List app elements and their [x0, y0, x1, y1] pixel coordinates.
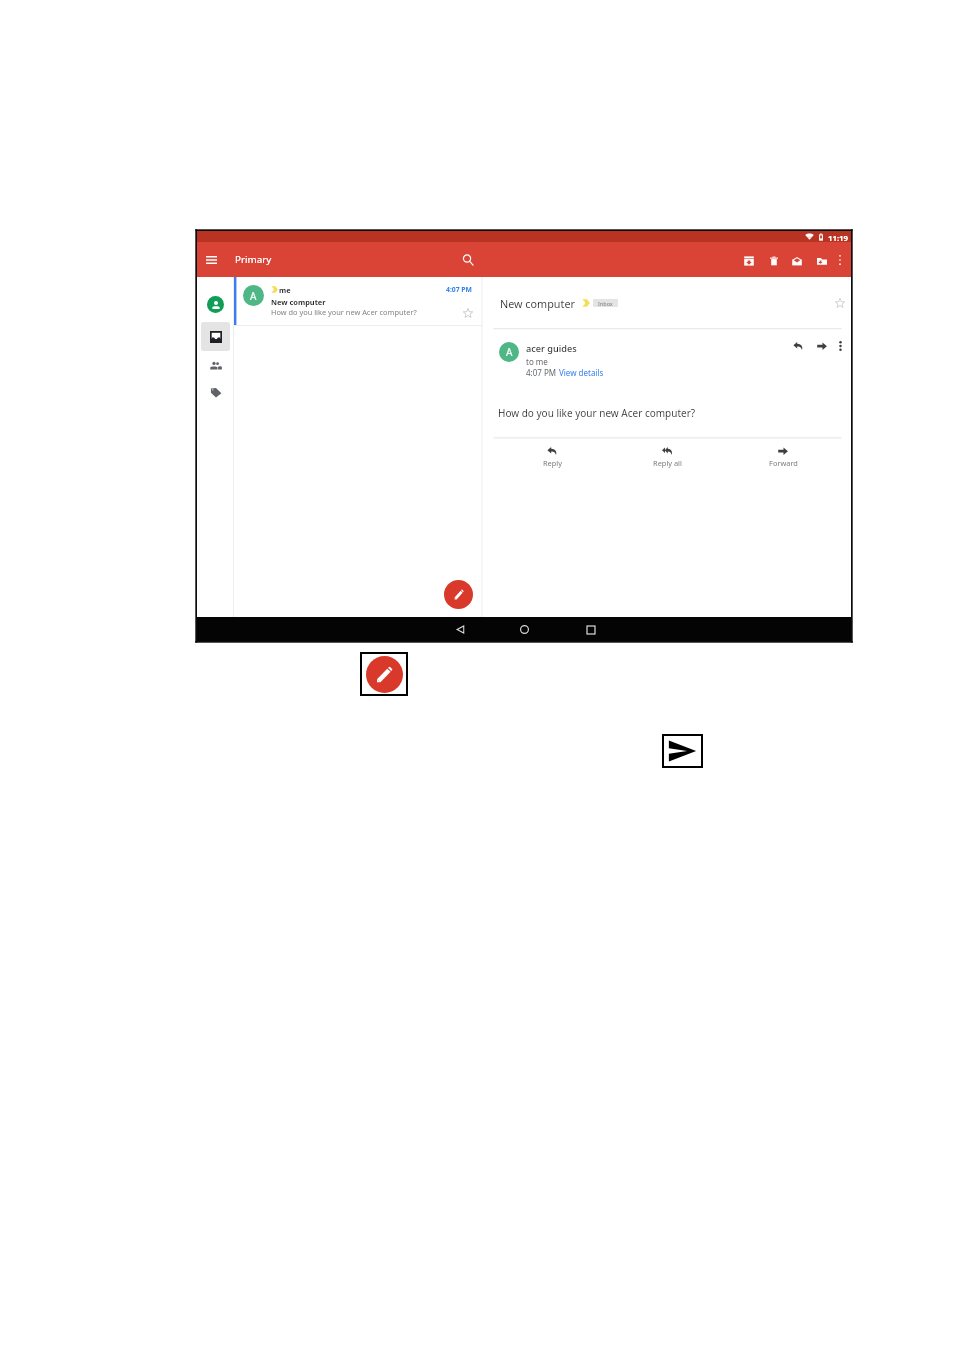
button[interactable]: Recent apps — [584, 623, 597, 636]
staticText: A — [250, 289, 257, 303]
button[interactable]: Reply — [790, 338, 806, 354]
button[interactable]: Compose — [444, 580, 473, 609]
staticText: 11:19 — [828, 233, 849, 244]
staticText: Reply all — [653, 458, 682, 468]
button[interactable]: Send — [664, 736, 701, 766]
staticText: New computer — [500, 296, 575, 311]
staticText: Primary — [235, 253, 272, 266]
button[interactable]: View details — [559, 367, 604, 378]
button[interactable]: Reply all — [645, 446, 689, 468]
staticText: Forward — [769, 458, 798, 468]
staticText: 4:07 PM — [526, 367, 559, 378]
button[interactable]: Star — [832, 295, 848, 311]
button[interactable]: More options — [831, 251, 849, 269]
button[interactable]: Move to folder — [811, 250, 832, 271]
button[interactable]: Open navigation drawer — [203, 251, 220, 268]
button[interactable]: Home — [518, 623, 531, 636]
button[interactable]: Star — [461, 306, 475, 320]
button[interactable]: Delete — [763, 250, 784, 271]
button[interactable]: Inbox — [593, 299, 618, 307]
button[interactable]: Account — [207, 296, 224, 313]
button[interactable]: Archive — [738, 250, 759, 271]
button[interactable]: Forward — [814, 338, 830, 354]
staticText: How do you like your new Acer computer? — [498, 406, 696, 420]
button[interactable]: A — [234, 277, 482, 326]
staticText: acer guides — [526, 342, 577, 355]
staticText: 4:07 PM — [446, 285, 472, 294]
button[interactable]: Promotions — [204, 380, 228, 404]
staticText: New computer — [271, 297, 326, 307]
staticText: A — [506, 345, 513, 359]
button[interactable]: Back — [454, 623, 467, 636]
button[interactable]: Search — [457, 249, 478, 270]
button[interactable]: Forward — [761, 446, 805, 468]
button[interactable]: Primary inbox — [201, 322, 230, 351]
button[interactable]: More options — [832, 338, 848, 354]
staticText: to me — [526, 356, 548, 367]
staticText: Inbox — [598, 300, 613, 307]
staticText: How do you like your new Acer computer? — [271, 307, 417, 317]
button[interactable]: Reply — [530, 446, 574, 468]
button[interactable]: Mark as read — [786, 250, 807, 271]
staticText: Reply — [543, 458, 562, 468]
staticText: me — [279, 285, 291, 295]
button[interactable]: Compose — [362, 654, 406, 694]
button[interactable]: Social — [204, 353, 228, 377]
